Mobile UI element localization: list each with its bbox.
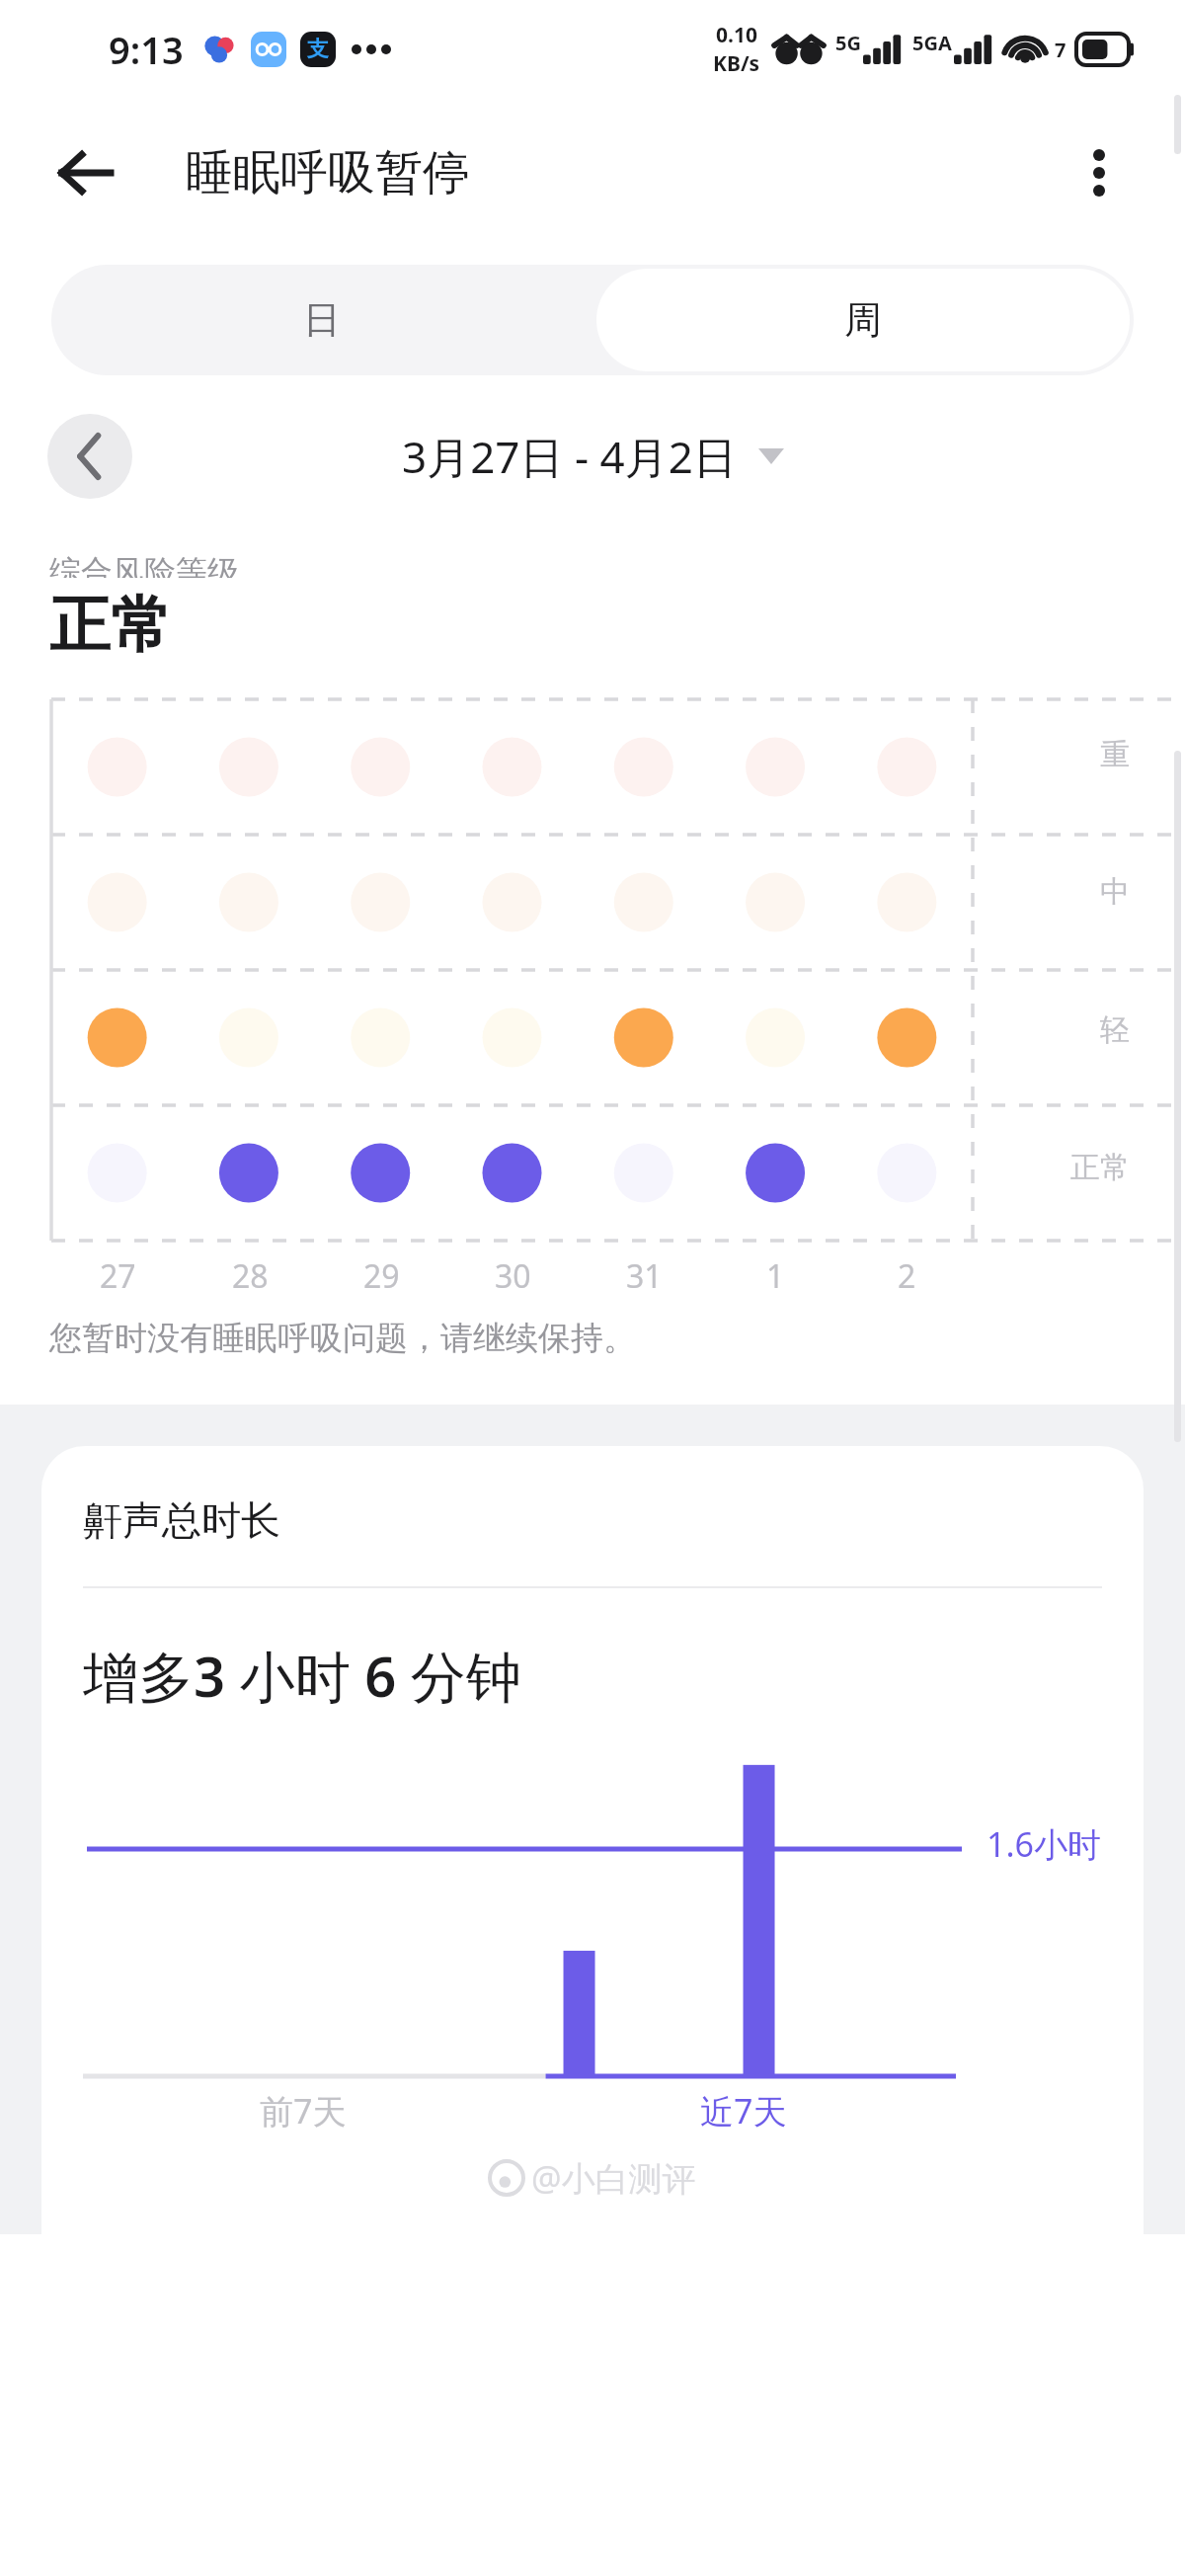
- staticText: 增多3 小时 6 分钟: [83, 1638, 521, 1713]
- button[interactable]: 日: [51, 265, 592, 375]
- staticText: 2: [898, 1254, 916, 1298]
- button[interactable]: 3月27日 - 4月2日: [402, 427, 784, 486]
- staticText: 轻: [1100, 1011, 1130, 1049]
- staticText: 3月27日 - 4月2日: [402, 427, 737, 486]
- staticText: 综合风险等级: [49, 552, 239, 578]
- staticText: 5G: [835, 30, 861, 56]
- staticText: 正常: [1070, 1149, 1130, 1186]
- staticText: 7: [1055, 37, 1066, 63]
- staticText: 28: [232, 1254, 269, 1298]
- staticText: @小白测评: [531, 2155, 696, 2201]
- staticText: 27: [100, 1254, 136, 1298]
- staticText: 1: [766, 1254, 785, 1298]
- staticText: 日: [303, 296, 341, 344]
- staticText: 您暂时没有睡眠呼吸问题，请继续保持。: [49, 1318, 636, 1359]
- staticText: 周: [844, 296, 882, 344]
- staticText: 30: [495, 1254, 531, 1298]
- staticText: KB/s: [713, 49, 760, 78]
- button[interactable]: Previous week: [47, 414, 132, 499]
- button[interactable]: Back: [38, 125, 132, 220]
- staticText: 近7天: [700, 2088, 787, 2133]
- staticText: 前7天: [260, 2088, 347, 2133]
- button[interactable]: More options: [1055, 128, 1144, 217]
- staticText: 支: [307, 36, 329, 63]
- staticText: 1.6小时: [987, 1821, 1102, 1867]
- staticText: 0.10: [716, 21, 757, 49]
- button[interactable]: 鼾声总时长: [41, 1446, 1144, 2234]
- staticText: 睡眠呼吸暂停: [186, 143, 470, 202]
- staticText: 29: [363, 1254, 400, 1298]
- staticText: 重: [1100, 736, 1130, 773]
- staticText: 中: [1100, 873, 1130, 911]
- staticText: 5GA: [912, 30, 952, 56]
- button[interactable]: 周: [596, 269, 1130, 371]
- staticText: 31: [626, 1254, 663, 1298]
- staticText: 9:13: [109, 24, 184, 75]
- staticText: 正常: [49, 587, 172, 664]
- staticText: 鼾声总时长: [83, 1495, 280, 1545]
